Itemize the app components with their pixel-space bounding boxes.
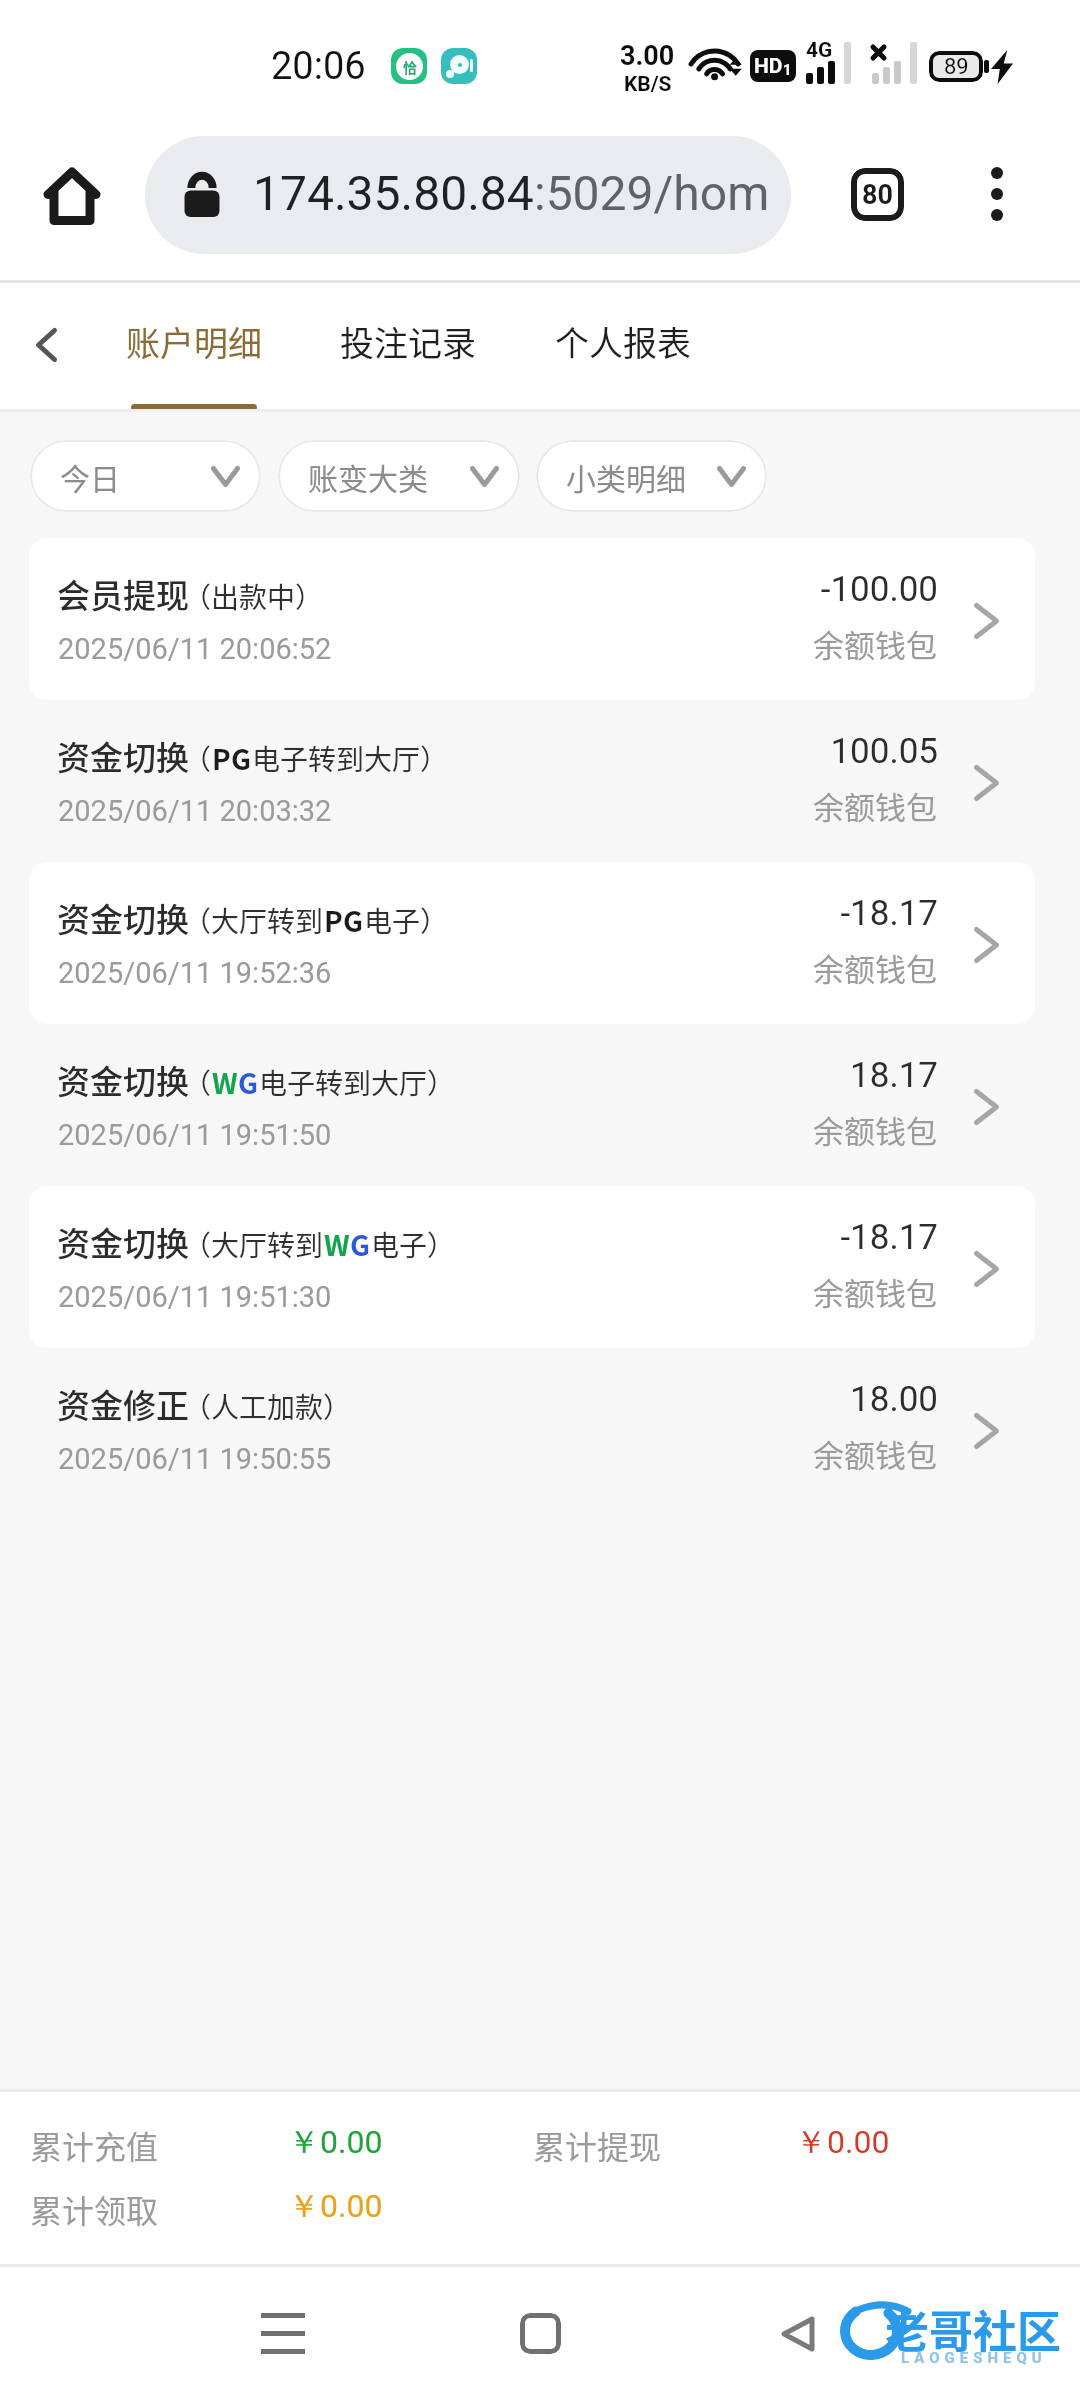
button[interactable]: 资金修正	[0, 1348, 1080, 1510]
staticText: G	[238, 1062, 259, 1103]
staticText: ￥0.00	[288, 2122, 383, 2162]
staticText: 2025/06/11 19:50:55	[58, 1442, 332, 1476]
staticText: （	[183, 1062, 212, 1103]
staticText: 余额钱包	[813, 1269, 937, 1314]
staticText: 174.35.80.84	[253, 165, 534, 221]
button[interactable]: Home	[30, 154, 114, 238]
staticText: 资金切换	[57, 894, 189, 942]
staticText: 电子）	[364, 900, 449, 941]
staticText: 老哥社区	[885, 2297, 1061, 2361]
staticText: 20:06	[271, 44, 366, 89]
button[interactable]: 今日	[30, 440, 261, 512]
staticText: 余额钱包	[813, 783, 937, 828]
staticText: 今日	[60, 455, 120, 498]
staticText: 投注记录	[340, 317, 476, 366]
staticText: 3.00	[620, 40, 675, 72]
button[interactable]: 174.35.80.84	[145, 136, 791, 254]
staticText: 余额钱包	[813, 621, 937, 666]
staticText: 资金切换	[57, 1056, 189, 1104]
staticText: 小类明细	[566, 455, 686, 498]
staticText: 资金切换	[57, 732, 189, 780]
staticText: 累计领取	[30, 2186, 159, 2232]
staticText: 恰	[403, 57, 417, 77]
button[interactable]: 资金切换	[0, 862, 1080, 1024]
staticText: -18.17	[840, 893, 938, 934]
staticText: P	[212, 738, 231, 779]
staticText: 资金修正	[57, 1380, 189, 1428]
staticText: 2025/06/11 19:51:30	[58, 1280, 332, 1314]
button[interactable]: 资金切换	[0, 700, 1080, 862]
staticText: 会员提现	[57, 570, 189, 618]
staticText: G	[343, 900, 364, 941]
staticText: 账变大类	[308, 455, 428, 498]
staticText: HD	[754, 54, 783, 79]
button[interactable]: 个人报表	[536, 283, 709, 409]
button[interactable]: 资金切换	[0, 1024, 1080, 1186]
staticText: （出款中）	[183, 576, 324, 617]
button[interactable]: Home	[470, 2267, 610, 2400]
button[interactable]: Recent apps	[213, 2267, 353, 2400]
button[interactable]: 资金切换	[0, 1186, 1080, 1348]
staticText: 2025/06/11 19:52:36	[58, 956, 332, 990]
staticText: -18.17	[840, 1217, 938, 1258]
staticText: （大厅转到	[183, 1224, 324, 1265]
staticText: 80	[862, 179, 893, 211]
staticText: 个人报表	[555, 317, 691, 366]
staticText: -100.00	[820, 569, 938, 610]
button[interactable]: 会员提现	[0, 538, 1080, 700]
staticText: 余额钱包	[813, 945, 937, 990]
staticText: 2025/06/11 19:51:50	[58, 1118, 332, 1152]
staticText: 电子转到大厅）	[252, 738, 449, 779]
staticText: （人工加款）	[183, 1386, 352, 1427]
staticText: 4G	[806, 38, 833, 63]
staticText: 累计充值	[30, 2122, 159, 2168]
staticText: 累计提现	[533, 2122, 662, 2168]
button[interactable]: 小类明细	[536, 440, 767, 512]
staticText: 2025/06/11 20:06:52	[58, 632, 332, 666]
staticText: 账户明细	[126, 317, 262, 366]
staticText: 18.00	[850, 1379, 938, 1420]
button[interactable]: 账变大类	[278, 440, 520, 512]
staticText: P	[324, 900, 343, 941]
staticText: 1	[783, 61, 792, 79]
button[interactable]: More options	[953, 150, 1041, 238]
staticText: 2025/06/11 20:03:32	[58, 794, 332, 828]
button[interactable]: Back	[4, 303, 88, 387]
staticText: W	[212, 1062, 238, 1103]
button[interactable]: 账户明细	[107, 283, 280, 409]
staticText: W	[324, 1224, 350, 1265]
button[interactable]: Tab switcher	[833, 150, 921, 238]
staticText: 89	[944, 54, 969, 80]
staticText: LAOGESHEQU	[901, 2349, 1047, 2367]
staticText: （	[183, 738, 212, 779]
button[interactable]: 投注记录	[321, 283, 494, 409]
staticText: （大厅转到	[183, 900, 324, 941]
staticText: :5029/hom	[534, 165, 770, 221]
staticText: 资金切换	[57, 1218, 189, 1266]
staticText: 18.17	[850, 1055, 938, 1096]
staticText: ￥0.00	[795, 2122, 890, 2162]
staticText: ￥0.00	[288, 2186, 383, 2226]
staticText: 电子）	[371, 1224, 456, 1265]
staticText: 余额钱包	[813, 1107, 937, 1152]
staticText: G	[350, 1224, 371, 1265]
staticText: 余额钱包	[813, 1431, 937, 1476]
staticText: 100.05	[830, 731, 938, 772]
staticText: 电子转到大厅）	[259, 1062, 456, 1103]
staticText: G	[231, 738, 252, 779]
button[interactable]: Back	[728, 2267, 868, 2400]
staticText: KB/S	[624, 72, 672, 97]
